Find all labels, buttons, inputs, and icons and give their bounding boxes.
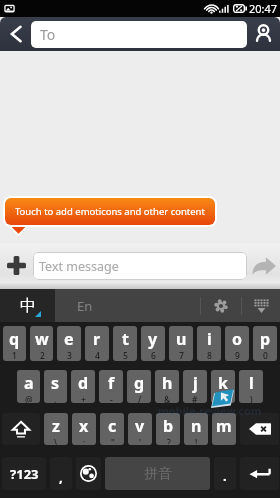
button[interactable]: n: [184, 413, 208, 445]
staticText: mobile-review.com: [158, 403, 262, 418]
staticText: m: [216, 415, 232, 437]
staticText: 8: [207, 350, 212, 361]
staticText: Touch to add emoticons and other content: [15, 205, 205, 218]
button[interactable]: f: [99, 370, 123, 403]
button[interactable]: b: [156, 413, 180, 445]
button[interactable]: g: [127, 370, 151, 403]
staticText: a: [24, 372, 34, 394]
staticText: x: [79, 415, 89, 437]
staticText: l: [249, 372, 254, 394]
staticText: 5: [123, 350, 128, 361]
button[interactable]: Change language: [76, 457, 101, 490]
staticText: ?123: [10, 465, 39, 483]
staticText: :: [83, 437, 86, 445]
button[interactable]: z: [44, 413, 68, 445]
staticText: 9: [235, 350, 240, 361]
staticText: !: [195, 437, 198, 445]
button[interactable]: Text message: [33, 252, 247, 280]
button[interactable]: h: [155, 370, 179, 403]
staticText: 20:47: [249, 1, 278, 16]
staticText: y: [148, 328, 158, 350]
staticText: u: [176, 328, 187, 350]
staticText: q: [9, 328, 20, 350]
button[interactable]: 拼音: [105, 457, 210, 490]
staticText: v: [135, 415, 145, 437]
button[interactable]: .: [214, 457, 236, 490]
staticText: .: [54, 394, 57, 403]
button[interactable]: i: [197, 326, 221, 361]
button[interactable]: Keyboard settings: [201, 289, 241, 322]
staticText: (: [222, 394, 225, 403]
button[interactable]: Add attachment: [0, 242, 33, 289]
button[interactable]: r: [85, 326, 109, 361]
button[interactable]: u: [169, 326, 193, 361]
staticText: j: [193, 372, 198, 394]
staticText: b: [163, 415, 174, 437]
button[interactable]: s: [44, 370, 67, 403]
staticText: -: [110, 394, 113, 403]
button[interactable]: v: [128, 413, 152, 445]
button[interactable]: ?123: [2, 457, 46, 490]
staticText: ': [139, 437, 142, 445]
button[interactable]: k: [211, 370, 235, 403]
staticText: &: [164, 394, 171, 403]
staticText: ,: [59, 468, 63, 486]
staticText: ?: [167, 437, 171, 445]
button[interactable]: Back: [0, 17, 31, 51]
button[interactable]: Shift: [2, 413, 40, 445]
button[interactable]: q: [3, 326, 26, 361]
staticText: 2: [40, 350, 45, 361]
button[interactable]: c: [100, 413, 124, 445]
staticText: s: [51, 372, 60, 394]
button[interactable]: w: [30, 326, 53, 361]
staticText: ": [111, 437, 115, 445]
button[interactable]: 中: [0, 289, 55, 322]
staticText: 1: [12, 350, 17, 361]
staticText: To: [40, 25, 56, 44]
staticText: n: [191, 415, 202, 437]
button[interactable]: o: [225, 326, 249, 361]
button[interactable]: x: [72, 413, 96, 445]
staticText: #: [192, 394, 198, 403]
button[interactable]: En: [55, 289, 200, 322]
staticText: @: [25, 394, 33, 403]
button[interactable]: d: [71, 370, 95, 403]
button[interactable]: y: [141, 326, 165, 361]
staticText: \: [54, 437, 58, 445]
button[interactable]: t: [113, 326, 137, 361]
button[interactable]: p: [253, 326, 277, 361]
staticText: w: [35, 328, 49, 350]
button[interactable]: l: [239, 370, 263, 403]
button[interactable]: m: [212, 413, 236, 445]
button[interactable]: e: [57, 326, 81, 361]
staticText: h: [162, 372, 173, 394]
staticText: /: [138, 394, 142, 403]
button[interactable]: ,: [50, 457, 72, 490]
staticText: r: [93, 328, 101, 350]
button[interactable]: Choose contact: [247, 17, 280, 51]
staticText: 0: [263, 350, 268, 361]
staticText: o: [232, 328, 243, 350]
staticText: Text message: [39, 258, 119, 275]
button[interactable]: To: [31, 21, 247, 48]
button[interactable]: Send: [247, 242, 280, 289]
staticText: 3: [67, 350, 72, 361]
button[interactable]: a: [17, 370, 40, 403]
staticText: c: [108, 415, 117, 437]
staticText: 7: [179, 350, 184, 361]
staticText: g: [134, 372, 145, 394]
button[interactable]: j: [183, 370, 207, 403]
button[interactable]: Enter: [240, 457, 279, 490]
button[interactable]: Touch to add emoticons and other content: [5, 198, 215, 225]
staticText: k: [218, 372, 228, 394]
staticText: p: [260, 328, 271, 350]
staticText: 中: [20, 296, 36, 316]
staticText: i: [207, 328, 212, 350]
staticText: t: [122, 328, 129, 350]
staticText: 4: [95, 350, 100, 361]
button[interactable]: Backspace: [240, 413, 279, 445]
staticText: 6: [151, 350, 156, 361]
button[interactable]: Hide keyboard: [242, 289, 280, 322]
staticText: .: [223, 467, 227, 485]
